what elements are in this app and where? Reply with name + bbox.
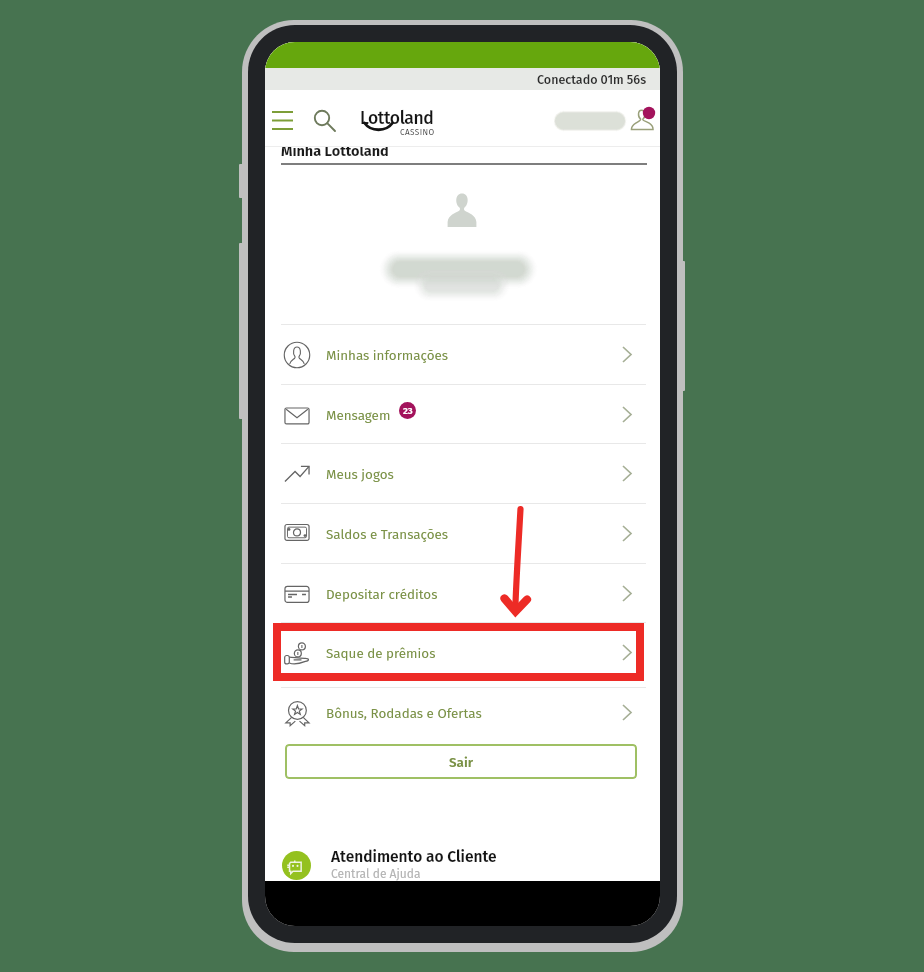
button[interactable]: Minhas informações [265, 325, 660, 384]
staticText: Lottoland [360, 108, 434, 129]
staticText: Minha Lottoland [281, 142, 389, 159]
staticText: Mensagem [326, 407, 391, 423]
staticText: Conectado 01m 56s [537, 72, 647, 87]
staticText: Atendimento ao Cliente [331, 848, 497, 867]
staticText: Saque de prêmios [326, 645, 436, 661]
button[interactable]: Saque de prêmios [265, 623, 660, 682]
button[interactable]: Saldos e Transações [265, 504, 660, 563]
staticText: Minhas informações [326, 347, 449, 363]
staticText: Meus jogos [326, 466, 394, 482]
button[interactable]: Bônus, Rodadas e Ofertas [265, 683, 660, 742]
button[interactable]: Search [310, 102, 340, 134]
staticText: Saldos e Transações [326, 526, 449, 542]
button[interactable]: Customer support [282, 851, 311, 880]
button[interactable]: Depositar créditos [265, 564, 660, 623]
staticText: Central de Ajuda [331, 867, 421, 881]
staticText: Bônus, Rodadas e Ofertas [326, 705, 482, 721]
button[interactable]: Mensagem [265, 385, 660, 444]
staticText: Sair [449, 754, 473, 770]
button[interactable]: Atendimento ao Cliente [331, 848, 531, 884]
button[interactable]: Account [630, 106, 654, 132]
button[interactable]: Meus jogos [265, 444, 660, 503]
button[interactable]: Menu [266, 102, 299, 134]
staticText: CASSINO [400, 127, 435, 137]
staticText: 23 [403, 405, 413, 416]
staticText: Depositar créditos [326, 586, 438, 602]
button[interactable]: Sair [285, 744, 637, 779]
